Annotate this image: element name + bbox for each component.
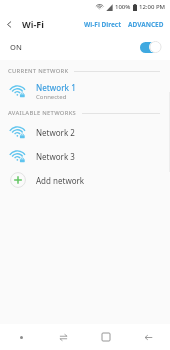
staticText: CURRENT NETWORK (8, 67, 69, 75)
staticText: Wi-Fi Direct (84, 20, 122, 29)
button[interactable]: Switch (42, 324, 84, 350)
staticText: Network 1 (36, 82, 76, 93)
button[interactable]: Recents (84, 324, 127, 350)
button[interactable]: ADVANCED (125, 16, 167, 33)
button[interactable]: Network 2 (0, 120, 170, 144)
staticText: 100% (115, 3, 131, 11)
staticText: AVAILABLE NETWORKS (8, 109, 77, 117)
staticText: 12:00 PM (139, 3, 166, 11)
staticText: Network 2 (36, 127, 75, 138)
staticText: ON (10, 42, 22, 52)
staticText: Add network (36, 175, 85, 186)
button[interactable]: Wi-Fi Direct (81, 16, 125, 33)
button[interactable]: ON (0, 34, 170, 60)
staticText: Wi-Fi (22, 18, 44, 30)
button[interactable]: Back (127, 324, 170, 350)
staticText: Network 3 (36, 151, 75, 162)
button[interactable]: Add network (0, 168, 170, 192)
button[interactable]: Menu (0, 324, 42, 350)
button[interactable]: Network 1 (0, 78, 170, 104)
button[interactable]: Back (0, 15, 18, 33)
staticText: ADVANCED (128, 20, 164, 29)
staticText: Connected (36, 93, 67, 101)
button[interactable]: Network 3 (0, 144, 170, 168)
